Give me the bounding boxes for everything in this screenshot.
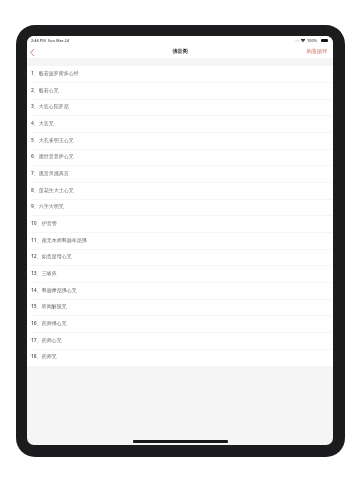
button[interactable]: 9、六字大明咒 <box>27 199 333 216</box>
button[interactable]: 7、观音灵感真言 <box>27 166 333 183</box>
button[interactable]: 13、三皈依 <box>27 266 333 283</box>
button[interactable]: 6、观世音菩萨心咒 <box>27 149 333 166</box>
button[interactable]: 14、释迦摩尼佛心咒 <box>27 283 333 300</box>
button[interactable]: 1、般若波罗蜜多心经 <box>27 66 333 83</box>
staticText: 4、大悲咒 <box>31 120 54 127</box>
button[interactable]: 12、如意度母心咒 <box>27 249 333 266</box>
button[interactable]: 10、护音赞 <box>27 216 333 233</box>
staticText: 3、大悲心陀罗尼 <box>31 103 69 110</box>
button[interactable]: 17、药师心咒 <box>27 333 333 350</box>
staticText: 2:44 PM Sun Mar 24 <box>31 38 69 43</box>
button[interactable]: 8、莲花生大士心咒 <box>27 183 333 200</box>
button[interactable]: 4、大悲咒 <box>27 116 333 133</box>
staticText: 9、六字大明咒 <box>31 203 64 210</box>
button[interactable]: 11、南无本师释迦牟尼佛 <box>27 233 333 250</box>
staticText: 7、观音灵感真言 <box>31 170 69 177</box>
staticText: 17、药师心咒 <box>31 337 62 344</box>
staticText: 15、听闻解脱咒 <box>31 303 67 310</box>
staticText: 100% <box>307 38 318 43</box>
staticText: 单曲循环 <box>306 48 328 55</box>
staticText: 8、莲花生大士心咒 <box>31 187 74 194</box>
staticText: 6、观世音菩萨心咒 <box>31 153 74 160</box>
staticText: 2、般若心咒 <box>31 87 59 94</box>
button[interactable]: 15、听闻解脱咒 <box>27 299 333 316</box>
button[interactable]: 3、大悲心陀罗尼 <box>27 99 333 116</box>
button[interactable]: Back <box>27 46 37 58</box>
staticText: 佛音阁 <box>172 48 188 55</box>
button[interactable]: 2、般若心咒 <box>27 83 333 100</box>
staticText: 16、药师佛心咒 <box>31 320 67 327</box>
staticText: 12、如意度母心咒 <box>31 253 72 260</box>
staticText: 1、般若波罗蜜多心经 <box>31 70 79 77</box>
staticText: 13、三皈依 <box>31 270 57 277</box>
button[interactable]: 5、大孔雀明王心咒 <box>27 133 333 150</box>
button[interactable]: 单曲循环 <box>303 46 333 57</box>
staticText: 5、大孔雀明王心咒 <box>31 137 74 144</box>
staticText: 10、护音赞 <box>31 220 57 227</box>
staticText: 18、药师咒 <box>31 353 57 360</box>
staticText: 14、释迦摩尼佛心咒 <box>31 287 77 294</box>
button[interactable]: 16、药师佛心咒 <box>27 316 333 333</box>
staticText: 11、南无本师释迦牟尼佛 <box>31 237 87 244</box>
button[interactable]: 18、药师咒 <box>27 349 333 366</box>
